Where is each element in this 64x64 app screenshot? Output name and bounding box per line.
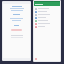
button[interactable] (34, 13, 60, 16)
button[interactable] (34, 16, 60, 19)
button[interactable] (34, 22, 60, 25)
button[interactable] (11, 29, 22, 31)
button[interactable]: App bar (34, 2, 60, 6)
button[interactable] (34, 10, 60, 13)
button[interactable] (34, 25, 60, 28)
button[interactable] (34, 19, 60, 22)
button[interactable] (34, 7, 60, 10)
